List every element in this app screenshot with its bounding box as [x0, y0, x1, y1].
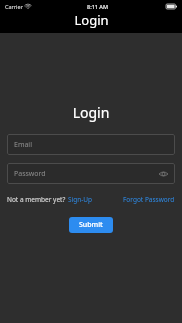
staticText: Not a member yet?: [7, 195, 66, 204]
staticText: 8:11 AM: [87, 3, 109, 10]
staticText: Submit: [79, 220, 103, 230]
button[interactable]: Submit: [69, 217, 113, 233]
staticText: Email: [14, 140, 32, 150]
button[interactable]: Forgot Password: [123, 195, 175, 204]
staticText: Carrier: [5, 3, 23, 10]
button[interactable]: Password: [7, 163, 175, 184]
staticText: Login: [74, 11, 109, 29]
button[interactable]: Email: [7, 134, 175, 155]
staticText: Login: [0, 103, 182, 122]
staticText: Sign-Up: [68, 195, 93, 204]
staticText: Forgot Password: [123, 195, 175, 204]
button[interactable]: Sign-Up: [68, 195, 93, 204]
staticText: Password: [14, 169, 46, 179]
button[interactable]: Show password: [157, 168, 169, 180]
